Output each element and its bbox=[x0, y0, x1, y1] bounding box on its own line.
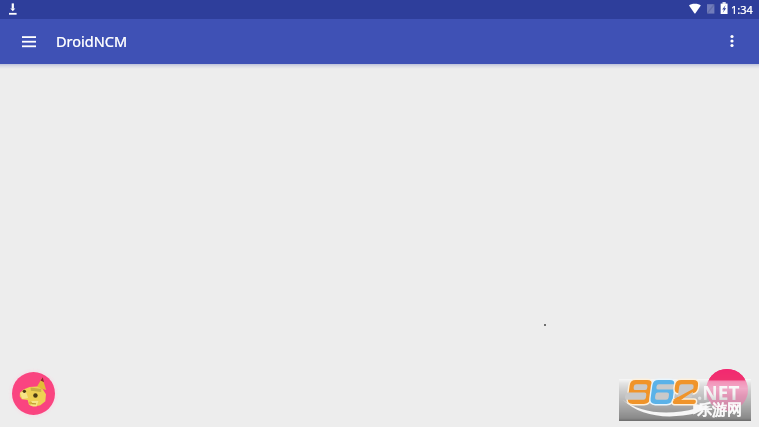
staticText: 1:34 bbox=[731, 2, 753, 17]
button[interactable]: More options bbox=[709, 19, 754, 64]
staticText: 乐游网 bbox=[697, 401, 742, 420]
button[interactable]: Add bbox=[12, 372, 55, 415]
staticText: DroidNCM bbox=[56, 31, 128, 51]
button[interactable]: Open navigation drawer bbox=[6, 18, 51, 63]
staticText: .NET bbox=[697, 380, 740, 406]
